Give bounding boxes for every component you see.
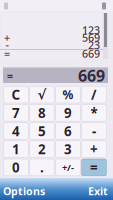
- button[interactable]: 2: [30, 141, 54, 157]
- button[interactable]: C: [4, 86, 28, 103]
- button[interactable]: =: [82, 159, 106, 176]
- button[interactable]: 8: [30, 104, 54, 121]
- button[interactable]: √: [30, 86, 54, 103]
- button[interactable]: 7: [4, 104, 28, 121]
- staticText: +/-: [62, 161, 74, 174]
- staticText: 6: [64, 122, 72, 140]
- staticText: √: [37, 87, 46, 102]
- staticText: 669: [78, 65, 105, 86]
- staticText: 1: [12, 140, 20, 158]
- staticText: =: [7, 68, 13, 83]
- staticText: 0: [12, 158, 20, 176]
- staticText: %: [62, 87, 73, 102]
- button[interactable]: +: [82, 141, 106, 157]
- button[interactable]: 3: [56, 141, 80, 157]
- staticText: 7: [12, 104, 20, 122]
- staticText: -: [92, 122, 96, 140]
- staticText: 2: [38, 140, 46, 158]
- button[interactable]: 1: [4, 141, 28, 157]
- staticText: Exit: [88, 184, 108, 198]
- staticText: 5: [38, 122, 46, 140]
- button[interactable]: 9: [56, 104, 80, 121]
- button[interactable]: Options: [3, 184, 59, 198]
- staticText: 8: [38, 104, 46, 122]
- button[interactable]: -: [82, 123, 106, 139]
- staticText: /: [91, 86, 97, 103]
- button[interactable]: 6: [56, 123, 80, 139]
- button[interactable]: 4: [4, 123, 28, 139]
- button[interactable]: %: [56, 86, 80, 103]
- staticText: Options: [3, 184, 45, 198]
- staticText: .: [40, 158, 44, 176]
- button[interactable]: Exit: [68, 184, 108, 198]
- staticText: 4: [12, 122, 20, 140]
- staticText: C: [11, 86, 20, 103]
- staticText: +: [4, 30, 10, 45]
- staticText: 669: [82, 46, 100, 61]
- staticText: =: [4, 46, 10, 61]
- button[interactable]: *: [82, 104, 106, 121]
- staticText: -: [5, 38, 8, 52]
- button[interactable]: /: [82, 86, 106, 103]
- staticText: 123: [82, 23, 100, 37]
- staticText: *: [90, 104, 97, 122]
- button[interactable]: +/-: [56, 159, 80, 176]
- staticText: +: [90, 140, 98, 158]
- staticText: =: [90, 158, 98, 176]
- button[interactable]: 5: [30, 123, 54, 139]
- button[interactable]: .: [30, 159, 54, 176]
- button[interactable]: 0: [4, 159, 28, 176]
- staticText: 3: [64, 140, 72, 158]
- staticText: 569: [82, 30, 100, 45]
- staticText: 23: [88, 38, 100, 52]
- staticText: 9: [64, 104, 72, 122]
